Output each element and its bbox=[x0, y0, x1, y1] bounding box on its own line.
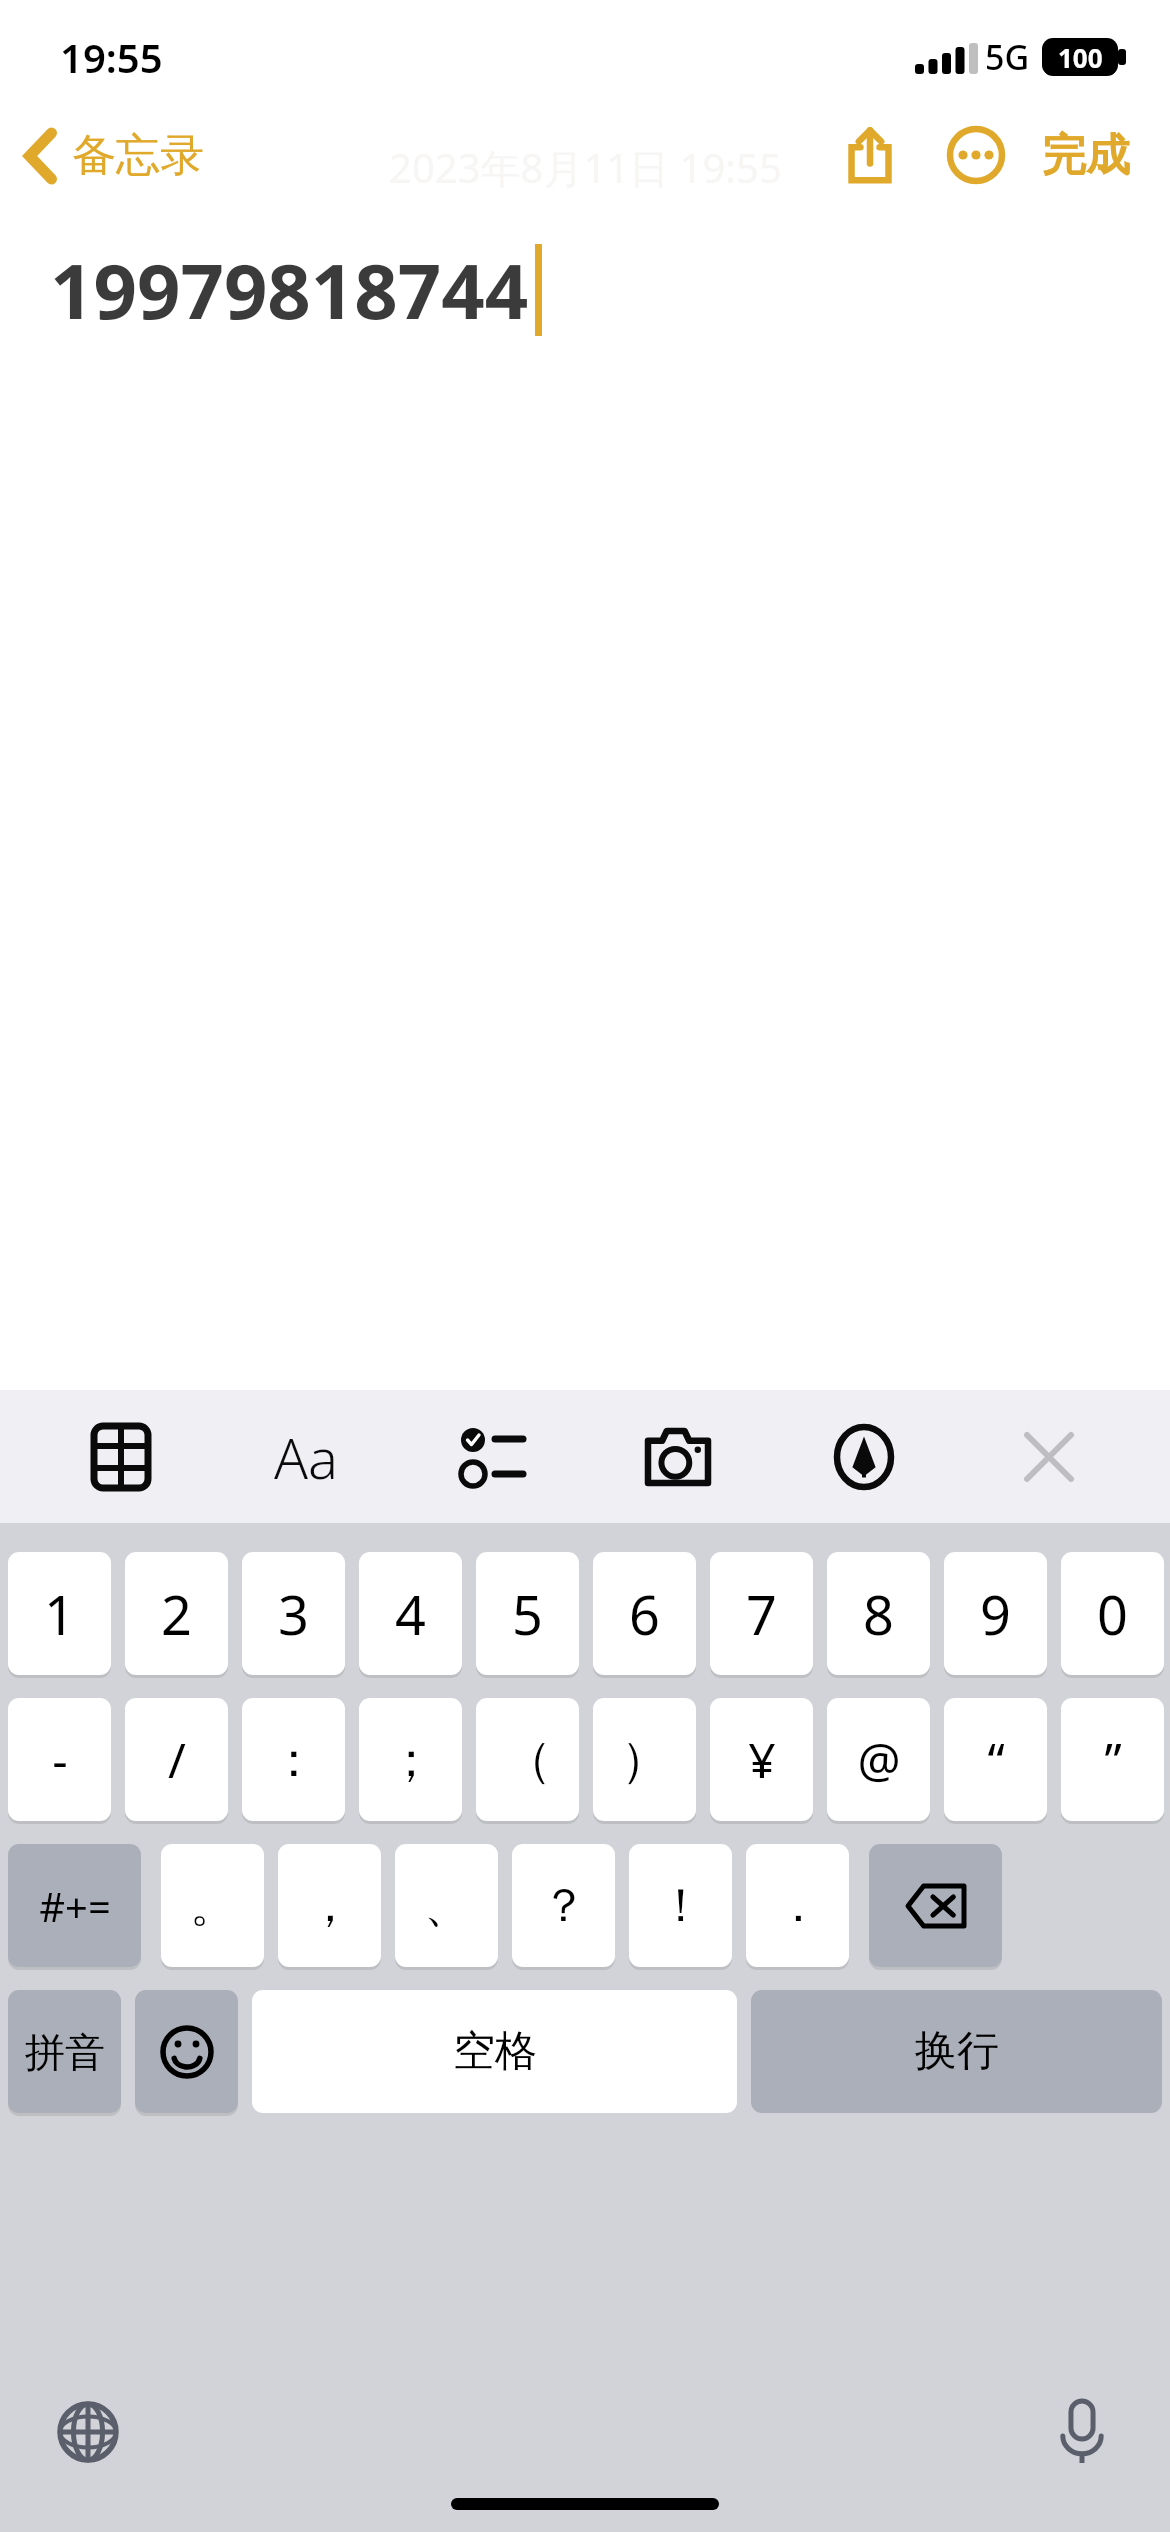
staticText: 1 bbox=[44, 1577, 75, 1651]
staticText: 空格 bbox=[453, 2025, 537, 2078]
staticText: ． bbox=[775, 1877, 821, 1935]
button[interactable]: 完成 bbox=[1032, 114, 1140, 197]
button[interactable]: 4 bbox=[359, 1552, 462, 1675]
button[interactable]: 换行 bbox=[751, 1990, 1162, 2113]
staticText: 8 bbox=[863, 1577, 894, 1651]
button[interactable]: Text format bbox=[241, 1390, 371, 1523]
button[interactable]: More options bbox=[930, 109, 1022, 201]
button[interactable]: “ bbox=[944, 1698, 1047, 1821]
button[interactable]: 0 bbox=[1061, 1552, 1164, 1675]
button[interactable]: Switch keyboard bbox=[42, 2386, 134, 2478]
button[interactable]: 空格 bbox=[252, 1990, 737, 2113]
staticText: 100 bbox=[1058, 40, 1103, 75]
staticText: 0 bbox=[1097, 1577, 1128, 1651]
staticText: 完成 bbox=[1042, 128, 1130, 183]
staticText: 备忘录 bbox=[72, 128, 204, 183]
staticText: 2 bbox=[161, 1577, 192, 1651]
button[interactable]: @ bbox=[827, 1698, 930, 1821]
button[interactable]: ． bbox=[746, 1844, 849, 1967]
staticText: 5 bbox=[512, 1577, 543, 1651]
button[interactable]: Camera bbox=[613, 1390, 743, 1523]
button[interactable]: 拼音 bbox=[8, 1990, 121, 2113]
staticText: 、 bbox=[424, 1877, 470, 1935]
staticText: 拼音 bbox=[25, 2027, 105, 2077]
staticText: 2023年8月11日 19:55 bbox=[389, 140, 782, 195]
staticText: ？ bbox=[541, 1877, 587, 1935]
button[interactable]: ” bbox=[1061, 1698, 1164, 1821]
staticText: 6 bbox=[629, 1577, 660, 1651]
button[interactable]: ： bbox=[242, 1698, 345, 1821]
staticText: 19:55 bbox=[60, 30, 163, 84]
button[interactable]: #+= bbox=[8, 1844, 141, 1967]
button[interactable]: 备忘录 bbox=[0, 120, 220, 191]
button[interactable]: Table bbox=[56, 1390, 186, 1523]
button[interactable]: 9 bbox=[944, 1552, 1047, 1675]
button[interactable]: ） bbox=[593, 1698, 696, 1821]
button[interactable]: 7 bbox=[710, 1552, 813, 1675]
staticText: 3 bbox=[278, 1577, 309, 1651]
staticText: 。 bbox=[190, 1877, 236, 1935]
button[interactable]: Emoji bbox=[135, 1990, 238, 2113]
button[interactable]: 。 bbox=[161, 1844, 264, 1967]
staticText: 9 bbox=[980, 1577, 1011, 1651]
staticText: #+= bbox=[39, 1879, 111, 1933]
staticText: ） bbox=[621, 1730, 669, 1790]
button[interactable]: - bbox=[8, 1698, 111, 1821]
button[interactable]: 8 bbox=[827, 1552, 930, 1675]
button[interactable]: Markup bbox=[799, 1390, 929, 1523]
staticText: - bbox=[52, 1727, 68, 1792]
staticText: 5G bbox=[985, 34, 1030, 80]
staticText: 7 bbox=[746, 1577, 777, 1651]
staticText: ¥ bbox=[748, 1727, 776, 1792]
button[interactable]: 1 bbox=[8, 1552, 111, 1675]
staticText: ： bbox=[270, 1730, 318, 1790]
button[interactable]: （ bbox=[476, 1698, 579, 1821]
staticText: ” bbox=[1104, 1727, 1122, 1792]
button[interactable]: ， bbox=[278, 1844, 381, 1967]
button[interactable]: / bbox=[125, 1698, 228, 1821]
staticText: / bbox=[168, 1727, 186, 1792]
staticText: ， bbox=[307, 1877, 353, 1935]
staticText: Aa bbox=[274, 1419, 339, 1495]
button[interactable]: 3 bbox=[242, 1552, 345, 1675]
button[interactable]: 、 bbox=[395, 1844, 498, 1967]
button[interactable]: ！ bbox=[629, 1844, 732, 1967]
staticText: @ bbox=[857, 1727, 901, 1792]
staticText: （ bbox=[504, 1730, 552, 1790]
button[interactable]: 5 bbox=[476, 1552, 579, 1675]
button[interactable]: ； bbox=[359, 1698, 462, 1821]
button[interactable]: 6 bbox=[593, 1552, 696, 1675]
staticText: 19979818744 bbox=[50, 238, 529, 342]
button[interactable]: ？ bbox=[512, 1844, 615, 1967]
staticText: “ bbox=[987, 1727, 1005, 1792]
button[interactable]: Backspace bbox=[869, 1844, 1002, 1967]
button[interactable]: 2 bbox=[125, 1552, 228, 1675]
button[interactable]: Close keyboard bbox=[984, 1390, 1114, 1523]
staticText: ； bbox=[387, 1730, 435, 1790]
button[interactable]: Dictation bbox=[1036, 2386, 1128, 2478]
button[interactable]: Checklist bbox=[427, 1390, 557, 1523]
staticText: 换行 bbox=[915, 2025, 999, 2078]
staticText: ！ bbox=[658, 1877, 704, 1935]
button[interactable]: ¥ bbox=[710, 1698, 813, 1821]
button[interactable]: Share bbox=[824, 109, 916, 201]
staticText: 4 bbox=[395, 1577, 426, 1651]
